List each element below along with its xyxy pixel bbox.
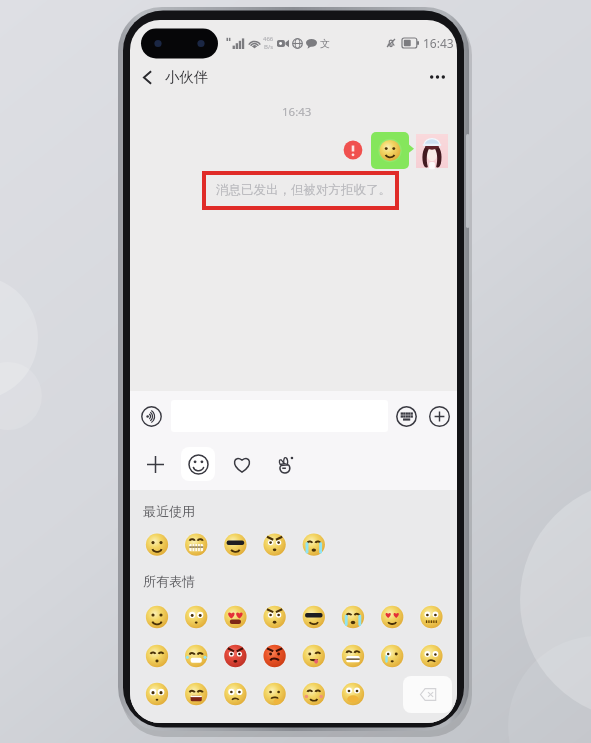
button[interactable]: Favourite stickers [225,447,259,481]
staticText: 466 [263,35,274,43]
staticText: 所有表情 [143,573,195,589]
staticText: 16:43 [423,35,454,51]
button[interactable]: Gesture stickers [268,447,302,481]
staticText: 消息已发出，但被对方拒收了。 [216,182,391,198]
button[interactable]: Add sticker [138,447,172,481]
button[interactable]: 小伙伴 [130,62,219,92]
staticText: 小伙伴 [165,68,209,86]
staticText: 文 [320,37,330,50]
button[interactable]: Keyboard [396,406,417,427]
staticText: 16:43 [282,104,312,120]
button[interactable]: More options [418,67,457,87]
other: Message failed [343,140,363,160]
staticText: 最近使用 [143,503,195,519]
button[interactable]: Emoji [181,447,215,481]
button[interactable]: Voice input [141,406,162,427]
staticText: B/s [264,43,274,51]
button[interactable]: More actions [429,406,450,427]
button[interactable]: Backspace [403,676,452,713]
